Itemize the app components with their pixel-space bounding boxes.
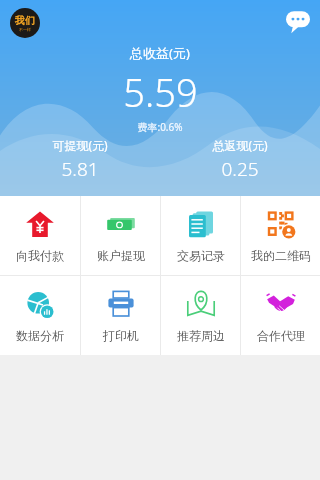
staticText: 费率:0.6% xyxy=(137,120,183,134)
button[interactable]: 打印机 xyxy=(81,276,160,355)
staticText: 数据分析 xyxy=(16,328,64,343)
button[interactable]: 我的二维码 xyxy=(241,196,320,275)
staticText: 0.25 xyxy=(221,156,259,182)
button[interactable]: 账户提现 xyxy=(81,196,160,275)
staticText: 总返现(元) xyxy=(212,137,268,153)
button[interactable]: 交易记录 xyxy=(161,196,240,275)
staticText: 不一样 xyxy=(19,27,31,32)
staticText: 我的二维码 xyxy=(251,248,311,263)
staticText: 推荐周边 xyxy=(177,328,225,343)
staticText: 向我付款 xyxy=(16,248,64,263)
button[interactable]: 合作代理 xyxy=(241,276,320,355)
staticText: 合作代理 xyxy=(257,328,305,343)
button[interactable]: 总返现(元) xyxy=(160,137,320,182)
staticText: 5.59 xyxy=(123,66,198,118)
staticText: 可提现(元) xyxy=(52,137,108,153)
staticText: 交易记录 xyxy=(177,248,225,263)
button[interactable]: 向我付款 xyxy=(0,196,80,275)
button[interactable]: Messages xyxy=(286,10,310,34)
staticText: 5.81 xyxy=(61,156,99,182)
button[interactable]: Logo xyxy=(10,8,40,38)
staticText: 账户提现 xyxy=(97,248,145,263)
button[interactable]: 可提现(元) xyxy=(0,137,160,182)
staticText: 总收益(元) xyxy=(130,44,190,62)
staticText: 打印机 xyxy=(103,328,139,343)
staticText: 我们 xyxy=(15,14,35,27)
button[interactable]: 数据分析 xyxy=(0,276,80,355)
button[interactable]: 推荐周边 xyxy=(161,276,240,355)
